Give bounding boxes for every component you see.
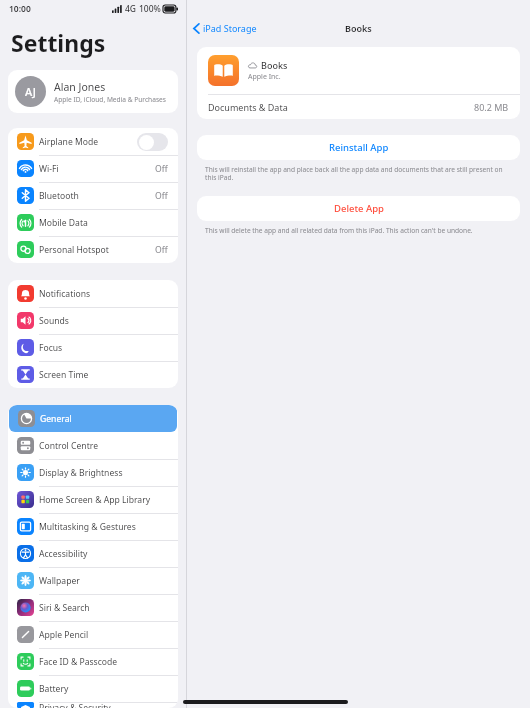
button[interactable]: Airplane Mode toggle xyxy=(137,133,168,151)
button[interactable]: Documents & Data xyxy=(197,95,520,119)
staticText: General xyxy=(40,413,167,425)
staticText: Bluetooth xyxy=(39,190,155,202)
staticText: Reinstall App xyxy=(329,141,389,154)
staticText: AJ xyxy=(25,84,36,99)
button[interactable]: Wi-Fi xyxy=(8,155,178,182)
button[interactable]: AJ xyxy=(8,70,178,113)
staticText: Home Screen & App Library xyxy=(39,494,168,506)
staticText: Books xyxy=(345,22,372,34)
button[interactable]: Focus xyxy=(8,334,178,361)
button[interactable]: Wallpaper xyxy=(8,567,178,594)
staticText: Off xyxy=(155,244,168,256)
staticText: 100% xyxy=(139,3,161,15)
staticText: Off xyxy=(155,190,168,202)
staticText: Apple Pencil xyxy=(39,629,168,641)
staticText: This will reinstall the app and place ba… xyxy=(205,165,512,182)
staticText: Privacy & Security xyxy=(39,702,168,708)
staticText: Accessibility xyxy=(39,548,168,560)
button[interactable]: Airplane Mode xyxy=(8,128,178,155)
button[interactable]: Sounds xyxy=(8,307,178,334)
staticText: Screen Time xyxy=(39,369,168,381)
staticText: Settings xyxy=(11,27,106,58)
button[interactable]: Screen Time xyxy=(8,361,178,388)
button[interactable]: Control Centre xyxy=(8,432,178,459)
button[interactable]: Bluetooth xyxy=(8,182,178,209)
staticText: Multitasking & Gestures xyxy=(39,521,168,533)
staticText: Siri & Search xyxy=(39,602,168,614)
button[interactable]: iPad Storage xyxy=(187,20,263,36)
staticText: Wallpaper xyxy=(39,575,168,587)
staticText: Notifications xyxy=(39,288,168,300)
button[interactable]: Home Screen & App Library xyxy=(8,486,178,513)
button[interactable]: Delete App xyxy=(197,196,520,221)
staticText: Alan Jones xyxy=(54,80,106,94)
button[interactable]: General xyxy=(9,405,177,432)
staticText: Books xyxy=(261,59,288,71)
button[interactable]: Mobile Data xyxy=(8,209,178,236)
button[interactable]: Display & Brightness xyxy=(8,459,178,486)
button[interactable]: Face ID & Passcode xyxy=(8,648,178,675)
button[interactable]: Accessibility xyxy=(8,540,178,567)
staticText: Control Centre xyxy=(39,440,168,452)
staticText: This will delete the app and all related… xyxy=(205,226,473,235)
staticText: 4G xyxy=(125,3,137,15)
button[interactable]: Privacy & Security xyxy=(8,702,178,708)
button[interactable]: Apple Pencil xyxy=(8,621,178,648)
staticText: Airplane Mode xyxy=(39,136,137,148)
staticText: Sounds xyxy=(39,315,168,327)
button[interactable]: Reinstall App xyxy=(197,135,520,160)
staticText: Wi-Fi xyxy=(39,163,155,175)
staticText: 10:00 xyxy=(9,3,31,15)
staticText: Focus xyxy=(39,342,168,354)
staticText: Display & Brightness xyxy=(39,467,168,479)
staticText: Delete App xyxy=(334,202,384,215)
staticText: iPad Storage xyxy=(203,22,257,34)
staticText: Documents & Data xyxy=(208,101,474,113)
button[interactable]: Siri & Search xyxy=(8,594,178,621)
staticText: Face ID & Passcode xyxy=(39,656,168,668)
staticText: Mobile Data xyxy=(39,217,168,229)
button[interactable]: Personal Hotspot xyxy=(8,236,178,263)
staticText: Off xyxy=(155,163,168,175)
button[interactable]: Notifications xyxy=(8,280,178,307)
staticText: Apple Inc. xyxy=(248,72,281,82)
staticText: Apple ID, iCloud, Media & Purchases xyxy=(54,95,166,104)
staticText: Personal Hotspot xyxy=(39,244,155,256)
button[interactable]: Books xyxy=(197,47,520,94)
button[interactable]: Battery xyxy=(8,675,178,702)
staticText: Battery xyxy=(39,683,168,695)
button[interactable]: Multitasking & Gestures xyxy=(8,513,178,540)
staticText: 80.2 MB xyxy=(474,101,509,113)
